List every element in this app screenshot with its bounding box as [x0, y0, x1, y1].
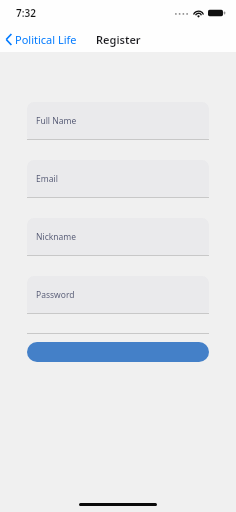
- button[interactable]: Email: [27, 160, 209, 198]
- staticText: Email: [36, 173, 58, 185]
- button[interactable]: Password: [27, 276, 209, 314]
- button[interactable]: Full Name: [27, 102, 209, 140]
- staticText: Full Name: [36, 115, 77, 127]
- staticText: Nickname: [36, 231, 77, 243]
- staticText: Password: [36, 289, 75, 301]
- button[interactable]: Register: [27, 342, 209, 362]
- staticText: Register: [96, 32, 141, 47]
- button[interactable]: Nickname: [27, 218, 209, 256]
- staticText: Political Life: [15, 32, 77, 47]
- staticText: 7:32: [16, 6, 36, 20]
- button[interactable]: Political Life: [0, 30, 83, 49]
